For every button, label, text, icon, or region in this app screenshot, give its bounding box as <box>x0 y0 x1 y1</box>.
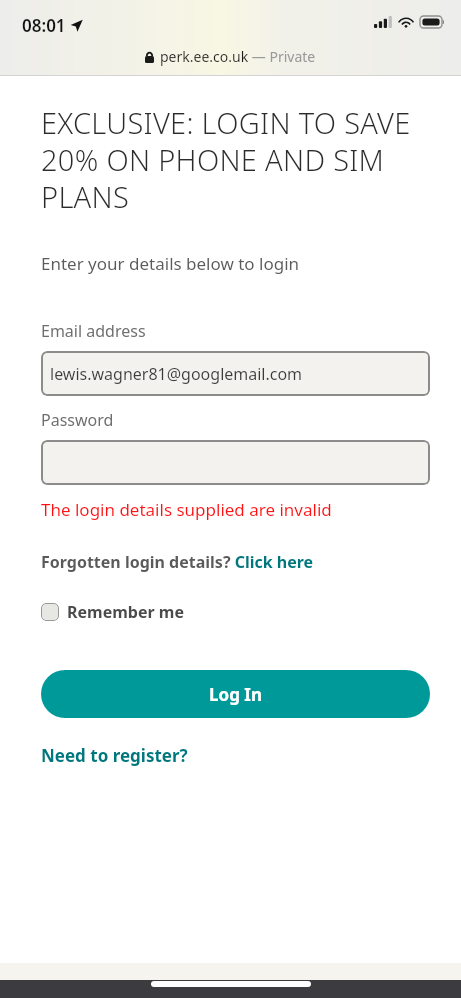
staticText: Forgotten login details? Click here <box>41 551 314 573</box>
staticText: lewis.wagner81@googlemail.com <box>50 363 303 385</box>
button[interactable]: Remember me <box>41 601 184 623</box>
staticText: EXCLUSIVE: LOGIN TO SAVE 20% ON PHONE AN… <box>41 103 430 217</box>
staticText: 08:01 <box>22 14 66 37</box>
button[interactable]: perk.ee.co.uk — Private <box>145 47 316 66</box>
staticText: Log In <box>209 683 262 706</box>
staticText: Password <box>41 409 114 431</box>
staticText: Remember me <box>67 601 184 623</box>
button[interactable] <box>41 440 430 485</box>
button[interactable]: Need to register? <box>41 744 188 767</box>
staticText: The login details supplied are invalid <box>41 498 332 521</box>
staticText: perk.ee.co.uk — Private <box>160 47 316 66</box>
staticText: Enter your details below to login <box>41 252 300 275</box>
button[interactable]: Log In <box>41 670 430 718</box>
button[interactable]: Forgotten login details? Click here <box>41 551 314 573</box>
staticText: Need to register? <box>41 744 188 767</box>
staticText: Email address <box>41 320 146 342</box>
button[interactable]: lewis.wagner81@googlemail.com <box>41 351 430 396</box>
